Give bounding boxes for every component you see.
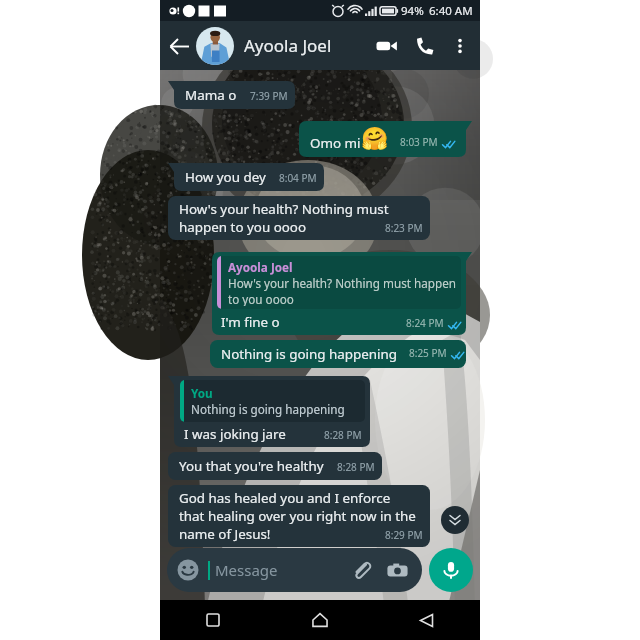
button[interactable]: How you dey	[168, 163, 324, 191]
staticText: 8:28 PM	[324, 428, 362, 442]
staticText: 8:03 PM	[400, 135, 438, 149]
staticText: Nothing is going happening	[221, 345, 398, 363]
button[interactable]: You	[168, 376, 370, 447]
staticText: 8:25 PM	[409, 346, 447, 360]
staticText: Mama o	[185, 86, 237, 104]
staticText: 8:04 PM	[279, 171, 317, 185]
button[interactable]: Nothing is going happening	[210, 340, 466, 368]
staticText: name of Jesus!	[179, 525, 271, 543]
staticText: happen to you oooo	[179, 218, 307, 236]
staticText: How's your health? Nothing must	[179, 200, 389, 218]
button[interactable]: God has healed you and I enforce	[168, 485, 430, 547]
staticText: God has healed you and I enforce	[179, 489, 391, 507]
button[interactable]: Record voice message	[429, 548, 473, 592]
button[interactable]: You that you're healthy	[168, 452, 382, 480]
staticText: I was joking jare	[184, 425, 286, 443]
staticText: 🤗	[361, 126, 389, 152]
button[interactable]: More options	[444, 30, 476, 62]
button[interactable]: Profile photo	[196, 27, 234, 65]
staticText: Ayoola Joel	[244, 34, 332, 57]
button[interactable]: Scroll to bottom	[441, 506, 469, 534]
staticText: to you oooo	[228, 291, 294, 306]
button[interactable]: Camera	[384, 557, 410, 583]
staticText: 94%	[401, 3, 424, 19]
staticText: How you dey	[185, 168, 266, 186]
staticText: 8:29 PM	[385, 528, 423, 542]
staticText: 6:40 AM	[429, 3, 473, 19]
button[interactable]: Ayoola Joel	[212, 252, 472, 335]
button[interactable]: Mama o	[168, 81, 295, 109]
staticText: 8:28 PM	[337, 460, 375, 474]
staticText: 8:24 PM	[406, 316, 444, 330]
staticText: 7:39 PM	[250, 89, 288, 103]
staticText: that healing over you right now in the	[179, 507, 416, 525]
button[interactable]: Message	[167, 548, 422, 592]
button[interactable]: How's your health? Nothing must	[168, 196, 430, 240]
staticText: Omo mi	[310, 134, 361, 152]
staticText: How's your health? Nothing must happen	[228, 275, 456, 291]
staticText: You that you're healthy	[179, 457, 324, 475]
button[interactable]: Video call	[368, 27, 406, 65]
staticText: I'm fine o	[221, 313, 280, 331]
button[interactable]: Back	[163, 30, 195, 62]
staticText: 8:23 PM	[385, 221, 423, 235]
staticText: Nothing is going happening	[191, 401, 345, 417]
button[interactable]: Attach file	[348, 557, 374, 583]
button[interactable]: Recents	[160, 600, 266, 640]
button[interactable]: Home	[266, 600, 373, 640]
button[interactable]: Omo mi	[299, 121, 472, 157]
staticText: Ayoola Joel	[228, 259, 293, 275]
staticText: You	[191, 385, 213, 401]
button[interactable]: Voice call	[406, 27, 444, 65]
button[interactable]: Back	[373, 600, 480, 640]
staticText: Message	[215, 560, 278, 580]
